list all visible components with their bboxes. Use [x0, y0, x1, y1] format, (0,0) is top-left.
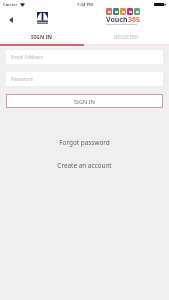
staticText: 365: [128, 15, 141, 22]
button[interactable]: Back: [5, 14, 16, 25]
staticText: 7:34 PM: [77, 2, 93, 8]
staticText: Forgot password: [59, 138, 110, 147]
button[interactable]: Create an account: [49, 160, 120, 171]
staticText: Password: [11, 76, 33, 83]
button[interactable]: Email Address: [6, 50, 163, 64]
staticText: SIGN IN: [74, 98, 95, 105]
button[interactable]: REGISTER: [84, 30, 169, 44]
staticText: Create an account: [57, 161, 112, 170]
button[interactable]: Forgot password: [51, 137, 118, 148]
staticText: Carrier: [3, 2, 18, 8]
staticText: Vouch: [106, 15, 128, 22]
button[interactable]: SIGN IN: [6, 94, 163, 108]
staticText: SIGN IN: [31, 33, 53, 40]
button[interactable]: SIGN IN: [0, 30, 84, 44]
staticText: Email Address: [11, 54, 43, 61]
staticText: REGISTER: [114, 33, 139, 40]
button[interactable]: Password: [6, 72, 163, 86]
